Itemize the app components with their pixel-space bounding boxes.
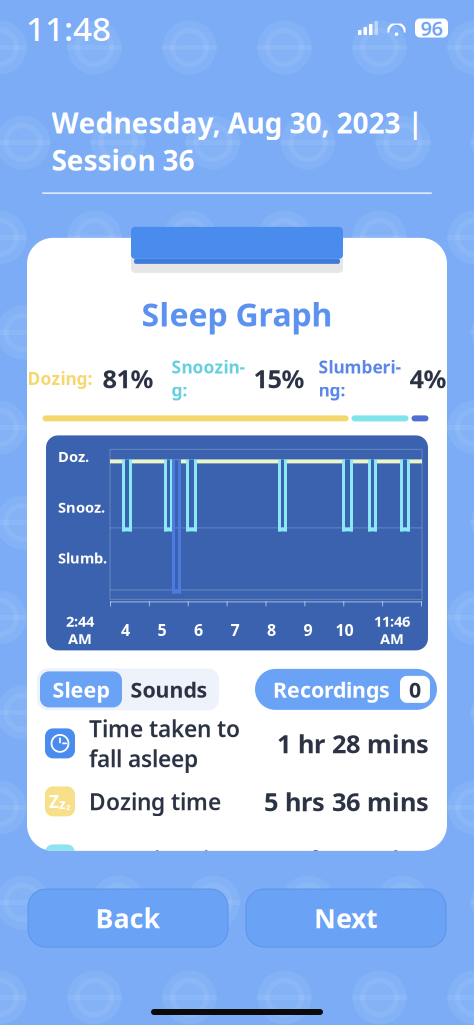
staticText: 11:46 (374, 611, 410, 631)
staticText: 2:44 (66, 611, 94, 631)
staticText: z (59, 795, 66, 813)
staticText: 5 hrs 36 mins (264, 785, 429, 818)
staticText: 15% (253, 362, 304, 395)
button[interactable]: Next (246, 889, 446, 947)
staticText: Doz. (58, 447, 89, 466)
staticText: Slumb. (58, 548, 107, 567)
staticText: Dozing: (27, 367, 92, 390)
button[interactable]: Sounds (122, 671, 216, 707)
button[interactable]: Time taken to fall asleep (35, 714, 439, 772)
staticText: 1 hr 4 mins (291, 843, 429, 876)
staticText: z (66, 800, 71, 813)
staticText: Recordings (273, 675, 390, 703)
staticText: Time taken to fall asleep (89, 713, 240, 773)
staticText: 5 (157, 619, 166, 640)
staticText: 81% (102, 362, 153, 395)
staticText: Next (314, 900, 378, 936)
button[interactable]: Recordings (255, 669, 437, 710)
staticText: 96 (420, 15, 442, 41)
staticText: 1 hr 28 mins (277, 727, 429, 760)
staticText: 4 (121, 619, 130, 640)
staticText: Snoozing time (89, 844, 244, 874)
staticText: Sleep Graph (141, 293, 332, 335)
staticText: 4% (409, 362, 446, 395)
staticText: Slumbering: (318, 355, 401, 401)
staticText: Z (49, 790, 59, 813)
staticText: 9 (303, 619, 312, 640)
staticText: Dozing time (89, 786, 221, 816)
staticText: 6 (194, 619, 203, 640)
button[interactable]: Z (35, 772, 439, 830)
staticText: 11:48 (26, 6, 111, 50)
staticText: Sleep (52, 675, 109, 703)
button[interactable]: Sleep (40, 671, 122, 707)
staticText: Wednesday, Aug 30, 2023 | Session 36 (51, 104, 422, 178)
button[interactable]: Z (35, 830, 439, 888)
staticText: Z (49, 848, 59, 871)
staticText: 10 (335, 619, 353, 640)
staticText: Back (95, 900, 160, 936)
staticText: 8 (267, 619, 276, 640)
staticText: AM (68, 629, 92, 648)
staticText: Sounds (130, 675, 207, 703)
button[interactable]: Back (28, 889, 228, 947)
staticText: Snooz. (58, 497, 105, 517)
staticText: 7 (230, 619, 239, 640)
staticText: Snoozing: (171, 355, 245, 401)
staticText: 0 (409, 675, 421, 703)
staticText: AM (380, 629, 404, 648)
